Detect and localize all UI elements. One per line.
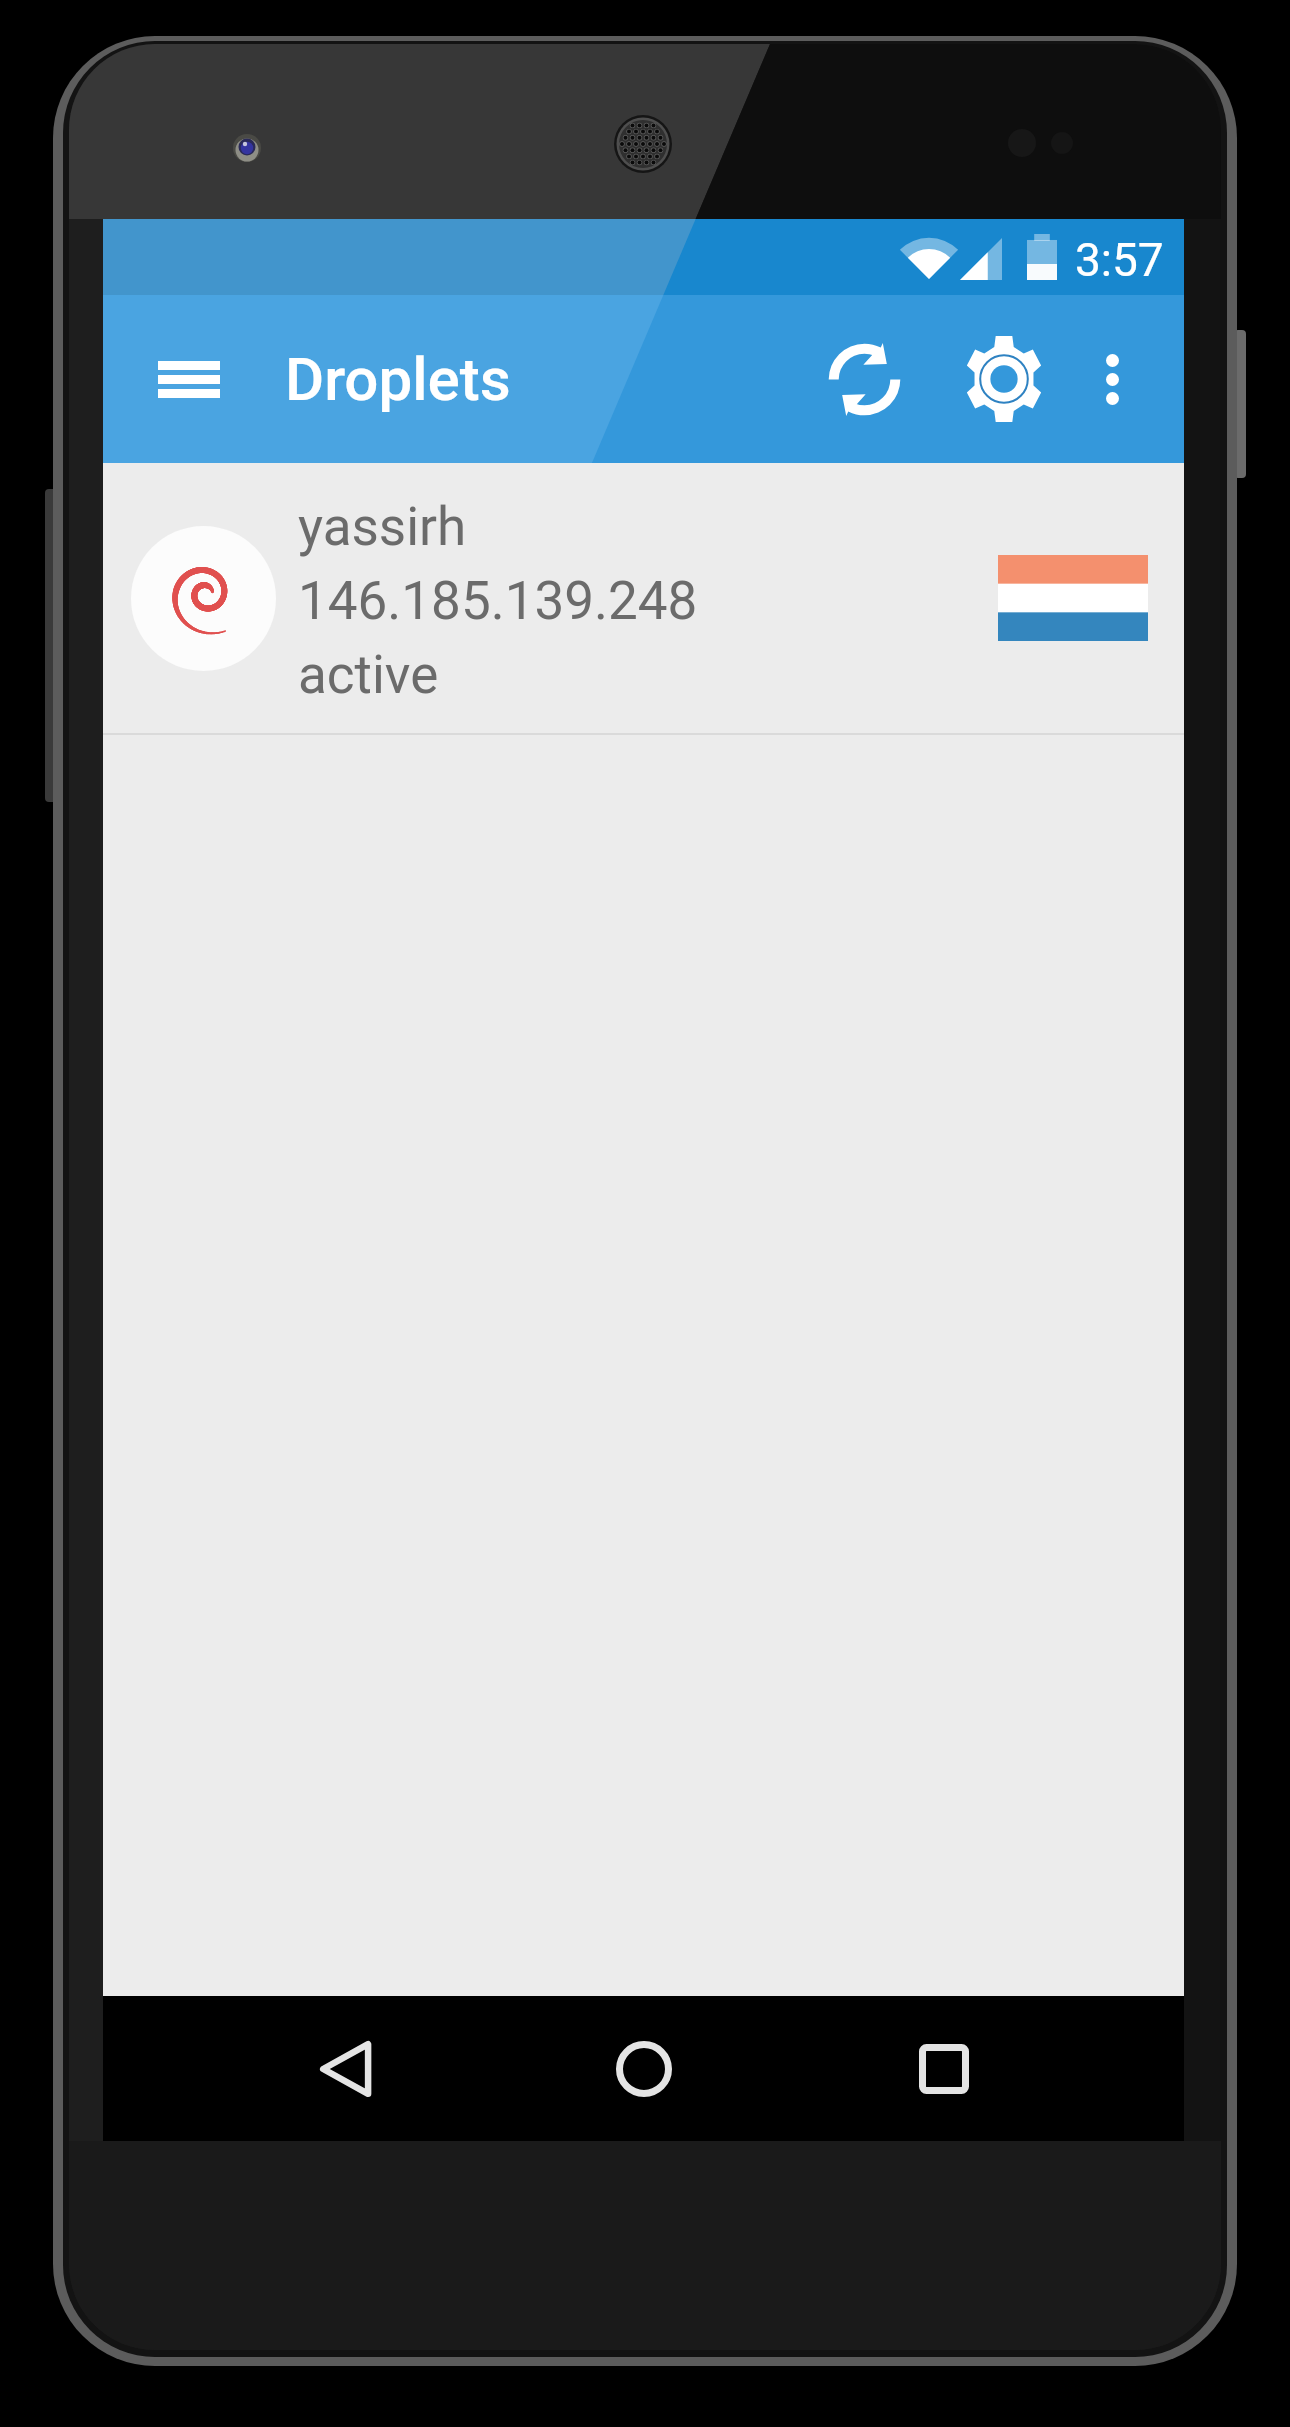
staticText: yassirh 146.185.139.248 active [298, 487, 698, 709]
button[interactable]: More options [1058, 295, 1166, 463]
button[interactable]: Back [271, 1996, 419, 2141]
staticText: Droplets [285, 344, 511, 414]
button[interactable]: Open navigation menu [135, 325, 243, 433]
button[interactable]: Settings [944, 295, 1064, 463]
button[interactable]: Recent apps [870, 1996, 1018, 2141]
button[interactable]: Home [570, 1996, 718, 2141]
staticText: 3:57 [1075, 233, 1164, 287]
button[interactable]: yassirh 146.185.139.248 active [103, 463, 1184, 735]
button[interactable]: Refresh [804, 295, 924, 463]
